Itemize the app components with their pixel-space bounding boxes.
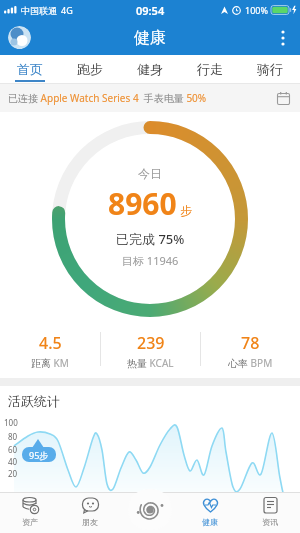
staticText: 80 [8,431,18,442]
button[interactable] [266,21,300,55]
button[interactable]: 朋友 [60,492,120,533]
staticText: 健身 [137,61,163,77]
staticText: 40 [8,456,18,467]
button[interactable]: 跑步 [60,55,120,83]
staticText: 60 [8,444,18,455]
button[interactable] [8,26,31,49]
staticText: 8960 [108,183,177,224]
button[interactable] [120,492,180,533]
staticText: 距离 KM [31,356,69,370]
button[interactable]: 健身 [120,55,180,83]
staticText: 行走 [197,61,223,77]
staticText: 步 [180,203,192,218]
staticText: 资讯 [262,517,278,527]
staticText: 活跃统计 [8,393,60,409]
staticText: 已连接 Apple Watch Series 4 手表电量 50% [8,91,207,105]
staticText: 目标 11946 [122,253,179,268]
staticText: 100 [4,417,18,428]
staticText: 今日 [138,166,162,181]
button[interactable]: 资讯 [240,492,300,533]
staticText: 朋友 [82,517,98,527]
staticText: 资产 [22,517,38,527]
staticText: 健康 [202,517,218,527]
button[interactable]: 资产 [0,492,60,533]
button[interactable]: 78 [201,325,300,372]
staticText: 09:54 [136,3,165,18]
staticText: 中国联通 [21,5,57,16]
staticText: 健康 [134,28,166,48]
button[interactable]: 行走 [180,55,240,83]
staticText: 热量 KCAL [127,356,174,370]
staticText: 4.5 [39,332,62,354]
staticText: 20 [8,468,18,479]
staticText: 骑行 [257,61,283,77]
staticText: 已完成 75% [116,230,185,248]
button[interactable]: 首页 [0,55,60,83]
button[interactable]: 骑行 [240,55,300,83]
button[interactable]: 健康 [180,492,240,533]
button[interactable]: 4.5 [0,325,100,372]
staticText: 95步 [29,449,49,461]
staticText: 100% [245,4,268,16]
staticText: 首页 [17,61,43,77]
button[interactable]: 239 [101,325,200,372]
button[interactable]: 已连接 Apple Watch Series 4 手表电量 50% [0,84,300,112]
staticText: 239 [137,332,165,354]
staticText: 78 [241,332,260,354]
staticText: 跑步 [77,61,103,77]
staticText: 心率 BPM [228,356,273,370]
staticText: 4G [61,4,73,16]
